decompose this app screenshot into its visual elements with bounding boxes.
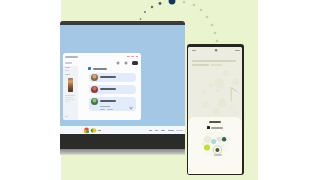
button[interactable]	[89, 97, 136, 111]
button[interactable]	[89, 85, 136, 94]
button[interactable]	[89, 73, 136, 82]
